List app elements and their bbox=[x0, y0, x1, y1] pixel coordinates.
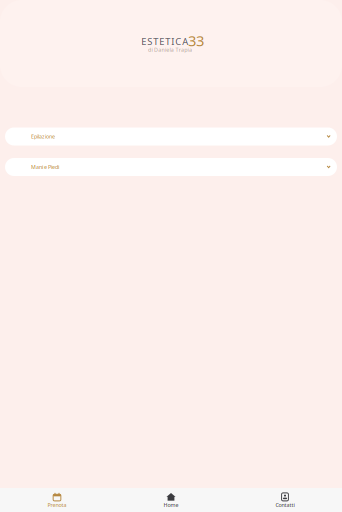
staticText: Epilazione bbox=[31, 133, 55, 140]
staticText: di Daniela Trapia bbox=[148, 46, 192, 53]
staticText: I bbox=[171, 35, 174, 48]
staticText: Prenota bbox=[47, 501, 66, 509]
button[interactable]: Home bbox=[114, 493, 228, 509]
staticText: E bbox=[141, 35, 146, 48]
staticText: A bbox=[182, 35, 188, 48]
button[interactable]: Epilazione bbox=[5, 127, 337, 145]
staticText: S bbox=[147, 35, 152, 48]
staticText: Home bbox=[163, 501, 178, 509]
staticText: 33 bbox=[188, 31, 204, 50]
button[interactable]: Mani e Piedi bbox=[5, 158, 337, 176]
button[interactable]: Prenota bbox=[0, 493, 114, 509]
staticText: E bbox=[159, 35, 164, 48]
staticText: Contatti bbox=[275, 501, 294, 509]
button[interactable]: Contatti bbox=[228, 493, 342, 509]
staticText: T bbox=[165, 35, 170, 48]
staticText: C bbox=[175, 35, 181, 48]
staticText: Mani e Piedi bbox=[31, 163, 59, 171]
staticText: T bbox=[153, 35, 158, 48]
